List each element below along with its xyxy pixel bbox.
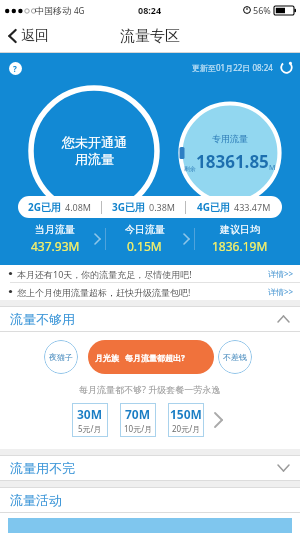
staticText: 专用流量	[212, 133, 248, 144]
staticText: 30M	[77, 406, 103, 422]
staticText: 当月流量	[35, 223, 75, 236]
button[interactable]: 建议日均	[195, 223, 284, 254]
staticText: 详情>>	[268, 268, 294, 279]
staticText: 建议日均	[220, 223, 260, 236]
staticText: 更新至01月22日 08:24	[192, 62, 273, 73]
staticText: 流量用不完	[10, 460, 277, 476]
button[interactable]: 夜猫子	[44, 340, 78, 374]
staticText: 每月流量都不够? 升级套餐一劳永逸	[79, 383, 221, 395]
button[interactable]: 当月流量	[16, 223, 106, 254]
staticText: 437.93M	[31, 238, 80, 254]
button[interactable]: 3G已用	[102, 200, 185, 214]
staticText: 流量专区	[120, 27, 180, 46]
button[interactable]: 专用流量	[178, 101, 282, 205]
button[interactable]: 帮助	[6, 59, 24, 77]
staticText: 每月流量都超出?	[125, 352, 185, 363]
staticText: 56%	[253, 4, 271, 16]
staticText: ?	[13, 63, 17, 74]
staticText: 10元/月	[124, 423, 153, 434]
staticText: 流量不够用	[10, 311, 277, 327]
button[interactable]: 月光族	[88, 340, 214, 374]
staticText: 1836.19M	[212, 238, 268, 254]
staticText: M	[269, 163, 276, 173]
button[interactable]: 70M	[120, 403, 156, 437]
staticText: 4G	[74, 5, 85, 16]
staticText: 3G已用	[112, 200, 145, 214]
staticText: 20元/月	[172, 423, 201, 434]
staticText: 4G已用	[197, 200, 230, 214]
staticText: 剩余	[184, 165, 196, 173]
button[interactable]: 本月还有10天，你的流量充足，尽情使用吧!	[0, 265, 300, 282]
staticText: 不差钱	[223, 352, 247, 362]
staticText: 0.15M	[127, 238, 162, 254]
staticText: 2G已用	[28, 200, 61, 214]
staticText: 您未开通通 用流量	[62, 134, 127, 168]
button[interactable]: 返回	[0, 23, 59, 49]
button[interactable]: 2G已用	[18, 200, 101, 214]
staticText: 夜猫子	[49, 352, 73, 362]
staticText: 70M	[125, 406, 151, 422]
button[interactable]: 刷新	[278, 59, 294, 75]
staticText: 0.38M	[149, 201, 176, 213]
button[interactable]: 您未开通通 用流量	[28, 85, 160, 217]
button[interactable]: 今日流量	[106, 223, 195, 254]
staticText: 433.47M	[234, 201, 271, 213]
staticText: 150M	[170, 406, 202, 422]
staticText: 本月还有10天，你的流量充足，尽情使用吧!	[17, 268, 268, 280]
staticText: 5元/月	[78, 423, 102, 434]
staticText: 月光族	[95, 353, 119, 363]
staticText: 您上个月使用流量超标，赶快升级流量包吧!	[17, 286, 268, 298]
button[interactable]: 30M	[72, 403, 108, 437]
button[interactable]: 150M	[168, 403, 204, 437]
button[interactable]: 流量用不完	[0, 456, 300, 480]
button[interactable]: 4G已用	[186, 200, 282, 214]
button[interactable]: 流量活动	[0, 488, 300, 512]
staticText: 08:24	[138, 4, 162, 16]
staticText: 4.08M	[65, 201, 92, 213]
staticText: 18361.85	[196, 150, 269, 173]
staticText: 流量活动	[10, 492, 62, 508]
staticText: 今日流量	[125, 223, 165, 236]
staticText: 详情>>	[268, 286, 294, 297]
button[interactable]: 流量不够用	[0, 307, 300, 331]
button[interactable]: 您上个月使用流量超标，赶快升级流量包吧!	[0, 283, 300, 300]
staticText: 返回	[21, 27, 49, 45]
button[interactable]: 不差钱	[218, 340, 252, 374]
staticText: 中国移动	[35, 5, 71, 16]
